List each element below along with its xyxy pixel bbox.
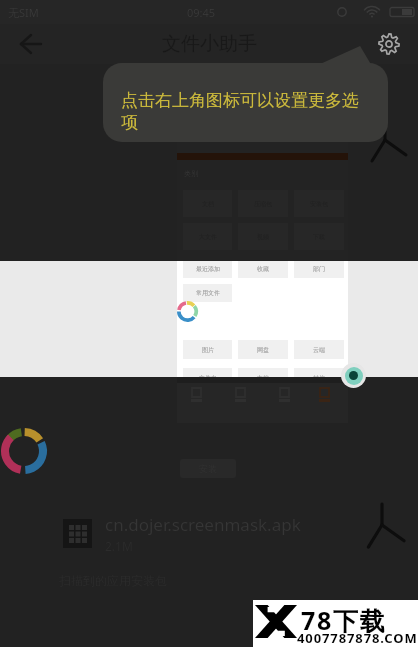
button[interactable]: 收藏 <box>238 260 288 278</box>
button[interactable]: Back <box>8 24 52 64</box>
staticText: 类别 <box>184 169 198 178</box>
staticText: 部门 <box>313 265 325 273</box>
button[interactable]: cn.dojer.screenmask.apk <box>0 504 418 562</box>
button[interactable]: 图片 <box>183 340 232 359</box>
staticText: 最近添加 <box>196 265 220 273</box>
staticText: 文件小助手 <box>162 32 257 56</box>
staticText: 点击右上角图标可以设置更多选项 <box>121 90 361 133</box>
staticText: 其他 <box>313 374 325 382</box>
button[interactable]: 常用文件 <box>183 284 232 302</box>
button[interactable]: 部门 <box>294 260 344 278</box>
button[interactable]: 网盘 <box>238 340 288 359</box>
button[interactable]: 最近添加 <box>183 260 232 278</box>
staticText: 云端 <box>313 346 325 354</box>
staticText: 图片 <box>202 346 214 354</box>
button[interactable]: 其他 <box>294 368 344 387</box>
staticText: 收藏 <box>257 265 269 273</box>
staticText: cn.dojer.screenmask.apk <box>105 513 301 536</box>
staticText: 常用文件 <box>196 289 220 297</box>
staticText: 网盘 <box>257 346 269 354</box>
button[interactable]: Settings <box>371 26 407 62</box>
staticText: 09:45 <box>187 5 216 20</box>
staticText: 无SIM <box>8 5 39 20</box>
button[interactable]: 文件夹 <box>183 368 232 387</box>
button[interactable] <box>312 388 336 412</box>
staticText: 4007787878.COM <box>297 629 418 647</box>
button[interactable]: 云端 <box>294 340 344 359</box>
staticText: 78下载 <box>301 603 387 637</box>
button[interactable]: 本地 <box>238 368 288 387</box>
staticText: 文件夹 <box>199 374 217 382</box>
staticText: 本地 <box>257 374 269 382</box>
